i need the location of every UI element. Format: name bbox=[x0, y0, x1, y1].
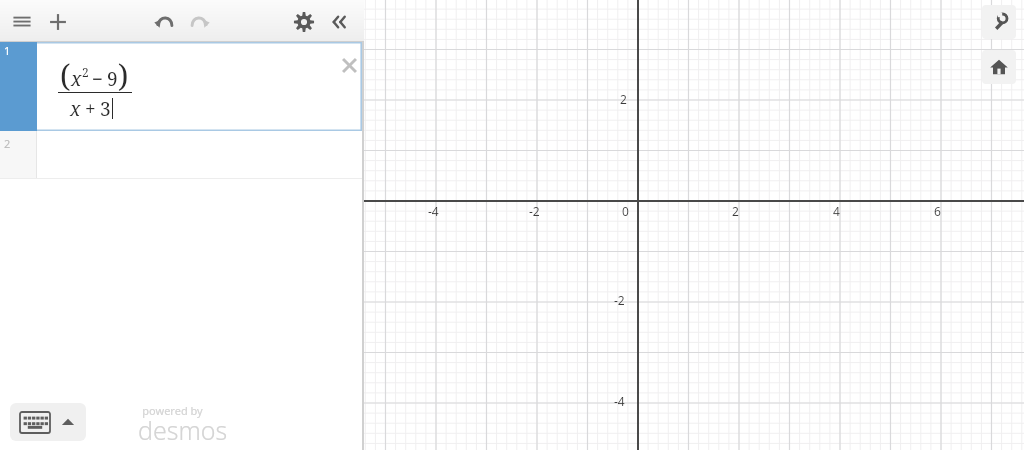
staticText: 2 bbox=[620, 91, 627, 107]
button[interactable]: Undo bbox=[150, 8, 178, 36]
staticText: ) bbox=[118, 55, 129, 96]
staticText: 2 bbox=[4, 136, 11, 151]
button[interactable]: Toggle keyboard bbox=[10, 403, 86, 441]
button[interactable]: Settings bbox=[982, 5, 1016, 39]
staticText: 2 bbox=[732, 203, 739, 219]
button[interactable]: Add expression bbox=[44, 8, 72, 36]
staticText: ( bbox=[60, 55, 71, 96]
staticText: 1 bbox=[4, 43, 11, 58]
staticText: 6 bbox=[934, 203, 941, 219]
staticText: 0 bbox=[622, 203, 629, 219]
staticText: -4 bbox=[428, 203, 439, 219]
staticText: x bbox=[70, 96, 81, 122]
staticText: + bbox=[85, 96, 96, 122]
button[interactable]: Delete expression bbox=[336, 52, 362, 78]
button[interactable]: 1 bbox=[0, 42, 362, 131]
staticText: -2 bbox=[529, 203, 540, 219]
staticText: powered by bbox=[142, 403, 203, 418]
button[interactable]: Collapse bbox=[325, 8, 353, 36]
staticText: -2 bbox=[614, 292, 625, 308]
staticText: 3 bbox=[100, 96, 111, 122]
button[interactable]: 2 bbox=[0, 131, 362, 179]
button[interactable]: Settings bbox=[290, 8, 318, 36]
staticText: 9 bbox=[107, 66, 118, 92]
staticText: desmos bbox=[138, 413, 228, 447]
staticText: x bbox=[71, 66, 82, 92]
staticText: 4 bbox=[833, 203, 840, 219]
staticText: 2 bbox=[82, 64, 89, 80]
button[interactable]: Menu bbox=[8, 8, 36, 36]
button[interactable]: Home bbox=[982, 50, 1016, 84]
staticText: -4 bbox=[614, 393, 625, 409]
staticText: − bbox=[92, 66, 104, 92]
button[interactable]: Redo bbox=[186, 8, 214, 36]
